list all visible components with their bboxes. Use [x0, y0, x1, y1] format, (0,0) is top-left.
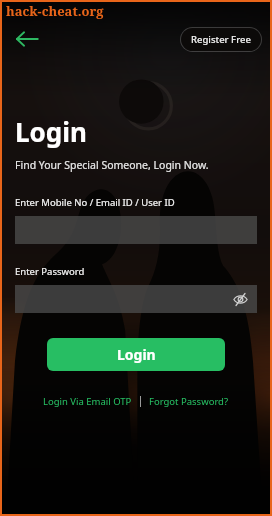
button[interactable]: Register Free: [180, 27, 262, 52]
staticText: Register Free: [191, 33, 251, 46]
staticText: Enter Mobile No / Email ID / User ID: [15, 196, 175, 209]
button[interactable]: Toggle password visibility: [15, 285, 257, 313]
button[interactable]: Back: [10, 22, 44, 56]
staticText: Login Via Email OTP: [43, 395, 132, 408]
staticText: Enter Password: [15, 265, 85, 278]
button[interactable]: Login Via Email OTP: [41, 393, 134, 410]
staticText: Find Your Special Someone, Login Now.: [15, 158, 209, 172]
staticText: Login: [15, 114, 87, 149]
button[interactable]: Forgot Password?: [147, 393, 231, 410]
button[interactable]: Toggle password visibility: [229, 288, 251, 310]
staticText: Login: [117, 345, 156, 364]
button[interactable]: Login: [47, 338, 225, 371]
staticText: Forgot Password?: [149, 395, 229, 408]
staticText: hack-cheat.org: [6, 2, 104, 20]
